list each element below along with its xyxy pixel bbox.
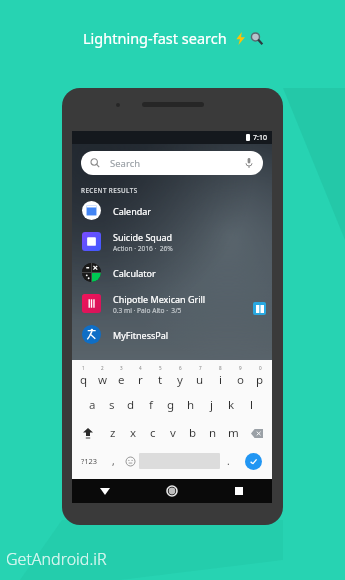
staticText: 6	[179, 365, 182, 371]
button[interactable]: v	[163, 419, 183, 447]
button[interactable]: Calendar	[72, 195, 272, 226]
button[interactable]: Emoji	[122, 447, 139, 475]
button[interactable]: k	[221, 391, 241, 419]
button[interactable]: 7	[190, 364, 210, 391]
button[interactable]: 1	[74, 364, 93, 391]
button[interactable]: 6	[170, 364, 190, 391]
staticText: Action · 2016 · 26%	[113, 244, 173, 253]
staticText: 5	[159, 365, 162, 371]
staticText: 0.3 mi · Palo Alto · 3/5	[113, 306, 182, 315]
staticText: 0	[259, 365, 262, 371]
staticText: u	[196, 372, 204, 388]
staticText: t	[158, 372, 163, 388]
button[interactable]: x	[123, 419, 143, 447]
button[interactable]: Shift	[74, 419, 102, 447]
staticText: f	[149, 397, 153, 413]
staticText: i	[219, 372, 222, 388]
button[interactable]: MyFitnessPal	[72, 319, 272, 350]
staticText: 2	[101, 365, 104, 371]
staticText: ?123	[81, 456, 98, 466]
button[interactable]: h	[181, 391, 201, 419]
staticText: e	[118, 372, 125, 388]
button[interactable]: z	[102, 419, 123, 447]
staticText: c	[150, 425, 156, 441]
button[interactable]: j	[201, 391, 221, 419]
staticText: m	[228, 425, 239, 441]
staticText: GetAndroid.iR	[6, 548, 107, 570]
button[interactable]: 8	[210, 364, 230, 391]
staticText: Chipotle Mexican Grill	[113, 293, 206, 305]
button[interactable]: Delete	[243, 419, 270, 447]
staticText: z	[110, 425, 116, 441]
staticText: RECENT RESULTS	[81, 186, 138, 195]
button[interactable]: l	[241, 391, 261, 419]
staticText: 7	[199, 365, 202, 371]
button[interactable]: 3	[112, 364, 131, 391]
staticText: r	[138, 372, 143, 388]
staticText: y	[177, 372, 183, 388]
staticText: 9	[239, 365, 242, 371]
button[interactable]: g	[161, 391, 181, 419]
button[interactable]: Recents	[205, 479, 272, 503]
staticText: MyFitnessPal	[113, 329, 169, 341]
staticText: Search	[110, 157, 141, 170]
staticText: Calculator	[113, 267, 156, 279]
button[interactable]: ?123	[74, 447, 105, 475]
button[interactable]: s	[102, 391, 121, 419]
staticText: Lightning-fast search	[83, 28, 227, 48]
staticText: b	[189, 425, 197, 441]
staticText: n	[209, 425, 217, 441]
staticText: l	[250, 397, 253, 413]
staticText: ,	[112, 454, 115, 468]
staticText: d	[127, 397, 135, 413]
button[interactable]: 4	[131, 364, 150, 391]
staticText: .	[227, 454, 230, 468]
staticText: j	[210, 397, 213, 413]
staticText: w	[98, 372, 108, 388]
button[interactable]: m	[223, 419, 243, 447]
staticText: 4	[139, 365, 142, 371]
staticText: 8	[219, 365, 222, 371]
staticText: g	[167, 397, 175, 413]
staticText: Calendar	[113, 205, 151, 217]
button[interactable]: a	[83, 391, 102, 419]
staticText: s	[109, 397, 115, 413]
staticText: x	[130, 425, 137, 441]
staticText: k	[228, 397, 235, 413]
button[interactable]: ,	[105, 447, 122, 475]
button[interactable]: c	[143, 419, 163, 447]
button[interactable]: f	[141, 391, 161, 419]
button[interactable]: Suicide Squad	[72, 226, 272, 257]
button[interactable]: Home	[138, 479, 205, 503]
button[interactable]: Calculator	[72, 257, 272, 288]
staticText: q	[80, 372, 88, 388]
button[interactable]: Split screen	[253, 302, 266, 315]
button[interactable]: Search	[81, 151, 263, 175]
staticText: p	[256, 372, 264, 388]
button[interactable]: b	[183, 419, 203, 447]
button[interactable]: Back	[72, 479, 138, 503]
button[interactable]: n	[203, 419, 223, 447]
button[interactable]: Done	[245, 453, 262, 470]
button[interactable]: 2	[93, 364, 112, 391]
button[interactable]: 5	[150, 364, 170, 391]
staticText: a	[89, 397, 96, 413]
staticText: h	[187, 397, 195, 413]
button[interactable]: 9	[230, 364, 250, 391]
button[interactable]: d	[121, 391, 141, 419]
staticText: 3	[120, 365, 123, 371]
staticText: 1	[82, 365, 85, 371]
staticText: 7:10	[253, 133, 267, 143]
button[interactable]: .	[220, 447, 237, 475]
staticText: Suicide Squad	[113, 231, 173, 243]
staticText: v	[170, 425, 176, 441]
button[interactable]: 0	[250, 364, 270, 391]
staticText: o	[237, 372, 244, 388]
button[interactable]: Chipotle Mexican Grill	[72, 288, 272, 319]
